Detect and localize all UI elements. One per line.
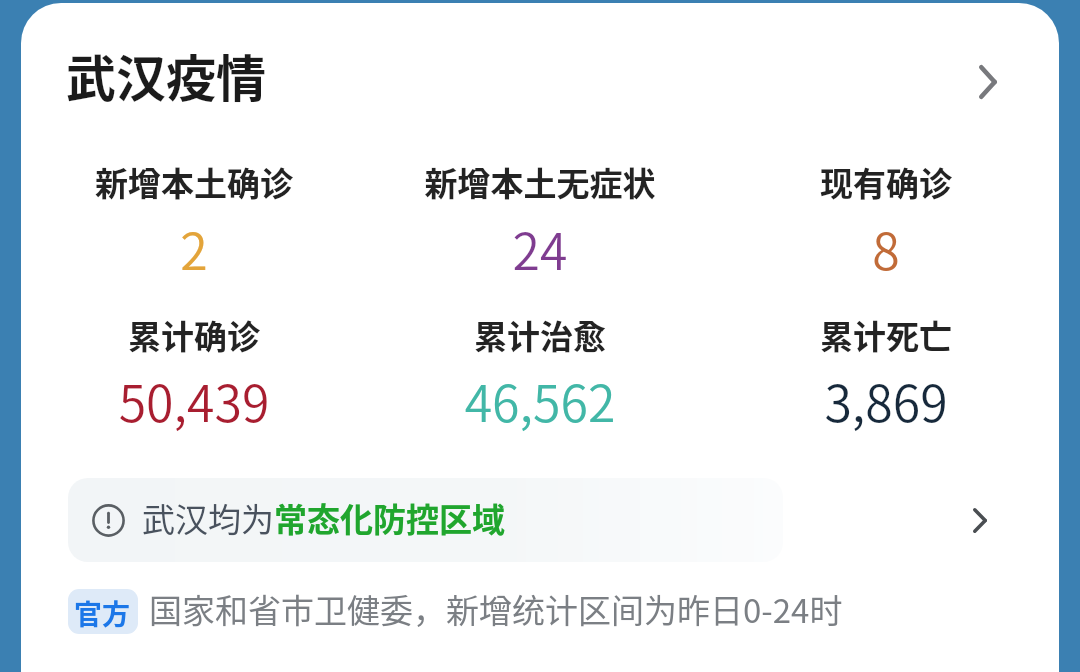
staticText: 新增本土确诊: [21, 158, 367, 206]
staticText: 武汉均为常态化防控区域: [142, 494, 505, 542]
staticText: 累计确诊: [21, 311, 367, 359]
other: View Wuhan epidemic details: [979, 65, 997, 99]
button[interactable]: 累计治愈: [367, 311, 713, 434]
other: Information: [92, 504, 125, 537]
staticText: 现有确诊: [713, 158, 1059, 206]
staticText: 累计死亡: [713, 311, 1059, 359]
staticText: 3,869: [713, 364, 1059, 436]
staticText: 累计治愈: [367, 311, 713, 359]
button[interactable]: 新增本土确诊: [21, 158, 367, 282]
button[interactable]: 武汉疫情: [21, 28, 1059, 108]
button[interactable]: Information: [68, 478, 1059, 562]
other: View control area information: [973, 508, 987, 533]
staticText: 2: [21, 212, 367, 284]
button[interactable]: 新增本土无症状: [367, 158, 713, 282]
staticText: 官方: [74, 593, 131, 634]
button[interactable]: 累计确诊: [21, 311, 367, 434]
staticText: 武汉疫情: [66, 39, 266, 111]
staticText: 50,439: [21, 364, 367, 436]
button[interactable]: 累计死亡: [713, 311, 1059, 434]
staticText: 新增本土无症状: [367, 158, 713, 206]
button[interactable]: 现有确诊: [713, 158, 1059, 282]
staticText: 46,562: [367, 364, 713, 436]
staticText: 国家和省市卫健委，新增统计区间为昨日0-24时: [149, 585, 843, 633]
staticText: 8: [713, 212, 1059, 284]
staticText: 24: [367, 212, 713, 284]
